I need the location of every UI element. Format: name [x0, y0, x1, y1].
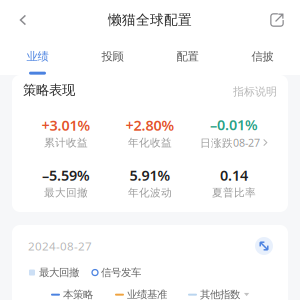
staticText: –5.59% [42, 165, 90, 185]
staticText: 懒猫全球配置 [108, 11, 192, 29]
staticText: 本策略 [63, 288, 93, 300]
staticText: 信号发车 [101, 266, 141, 279]
staticText: 2024-08-27 [28, 238, 92, 254]
staticText: 最大回撤 [44, 186, 88, 199]
staticText: 0.14 [220, 165, 248, 185]
staticText: 夏普比率 [212, 186, 256, 199]
button[interactable]: Share [254, 0, 300, 40]
button[interactable]: Back [0, 0, 46, 40]
button[interactable]: 投顾 [75, 40, 150, 75]
staticText: 业绩 [26, 49, 48, 64]
staticText: 其他指数 [200, 288, 240, 300]
staticText: 最大回撤 [39, 266, 79, 279]
staticText: 策略表现 [23, 82, 75, 98]
button[interactable]: 业绩 [0, 40, 75, 75]
button[interactable]: 指标说明 [233, 82, 277, 98]
staticText: 年化波动 [128, 186, 172, 199]
staticText: 配置 [176, 49, 198, 64]
staticText: 指标说明 [233, 85, 277, 98]
staticText: 信披 [251, 49, 273, 64]
button[interactable]: 配置 [150, 40, 225, 75]
staticText: –0.01% [210, 115, 258, 134]
staticText: 5.91% [129, 165, 170, 185]
staticText: +2.80% [125, 115, 174, 135]
staticText: 累计收益 [44, 136, 88, 149]
staticText: 日涨跌08-27 [200, 135, 260, 150]
staticText: +3.01% [41, 115, 90, 135]
button[interactable]: Fullscreen chart [255, 237, 273, 255]
staticText: 投顾 [101, 49, 123, 64]
button[interactable]: 信披 [225, 40, 300, 75]
staticText: 业绩基准 [127, 288, 167, 300]
staticText: 年化收益 [128, 136, 172, 149]
